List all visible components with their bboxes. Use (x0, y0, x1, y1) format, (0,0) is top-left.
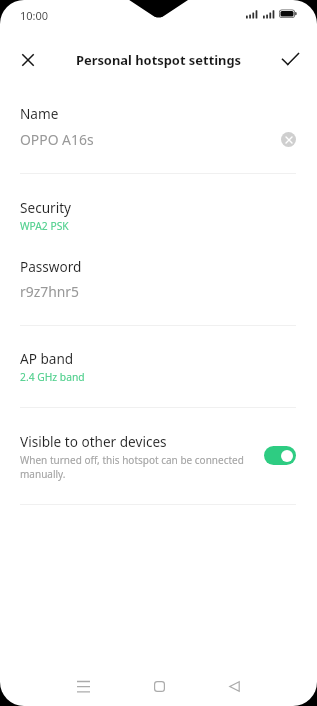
staticText: Name (20, 104, 59, 123)
staticText: r9z7hnr5 (20, 282, 80, 301)
button[interactable]: Clear name (281, 132, 296, 147)
button[interactable]: Home (139, 666, 179, 706)
staticText: When turned off, this hotspot can be con… (20, 453, 248, 481)
staticText: Password (20, 257, 82, 276)
button[interactable]: Recent apps (63, 666, 103, 706)
button[interactable]: Close (8, 39, 48, 79)
staticText: OPPO A16s (20, 130, 94, 149)
staticText: Visible to other devices (20, 432, 167, 451)
staticText: WPA2 PSK (20, 219, 69, 233)
button[interactable]: Back (214, 666, 254, 706)
button[interactable]: Visible to other devices (264, 446, 296, 465)
button[interactable]: Confirm (270, 39, 310, 79)
staticText: Personal hotspot settings (0, 51, 317, 69)
staticText: Security (20, 198, 72, 217)
staticText: AP band (20, 349, 74, 368)
staticText: 2.4 GHz band (20, 370, 85, 384)
staticText: 10:00 (20, 8, 49, 23)
